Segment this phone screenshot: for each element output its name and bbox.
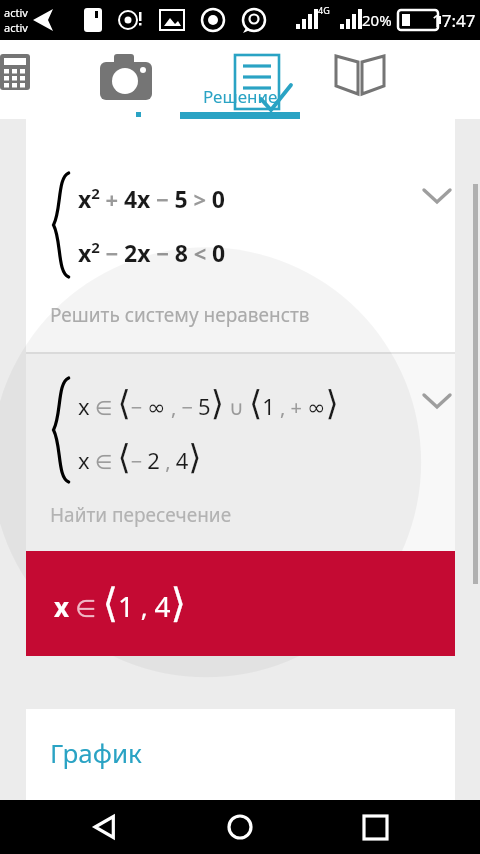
staticText: x ∈ ⟨1 , 4⟩ (54, 580, 187, 627)
staticText: 17:47 (432, 9, 476, 32)
button[interactable]: Home (210, 800, 270, 854)
staticText: x ∈ ⟨− 2 , 4⟩ (78, 437, 202, 477)
button[interactable]: x ∈ ⟨− ∞ , − 5⟩ ∪ ⟨1 , + ∞⟩ (26, 354, 455, 551)
button[interactable]: Book (330, 40, 390, 100)
staticText: x ∈ ⟨− ∞ , − 5⟩ ∪ ⟨1 , + ∞⟩ (78, 383, 339, 423)
button[interactable]: Back (75, 800, 135, 854)
staticText: График (50, 735, 142, 770)
button[interactable]: x ∈ ⟨1 , 4⟩ (26, 551, 455, 656)
staticText: x2 − 2x − 8 < 0 (78, 237, 226, 268)
staticText: 20% (362, 10, 392, 30)
staticText: Решение (203, 85, 278, 108)
staticText: x2 + 4x − 5 > 0 (78, 183, 225, 214)
button[interactable]: Calculator (0, 40, 38, 100)
staticText: 4G (318, 4, 330, 16)
staticText: activ (4, 20, 28, 35)
staticText: activ (4, 5, 28, 20)
button[interactable]: Recents (345, 800, 405, 854)
staticText: Найти пересечение (50, 502, 232, 528)
button[interactable]: Camera (96, 40, 156, 100)
button[interactable]: x2 + 4x − 5 > 0 (26, 119, 455, 352)
staticText: Решить систему неравенств (50, 302, 310, 328)
button[interactable]: Expand (415, 384, 459, 416)
button[interactable]: График (26, 709, 455, 801)
button[interactable]: Решение (180, 40, 300, 119)
button[interactable]: Expand (415, 179, 459, 211)
